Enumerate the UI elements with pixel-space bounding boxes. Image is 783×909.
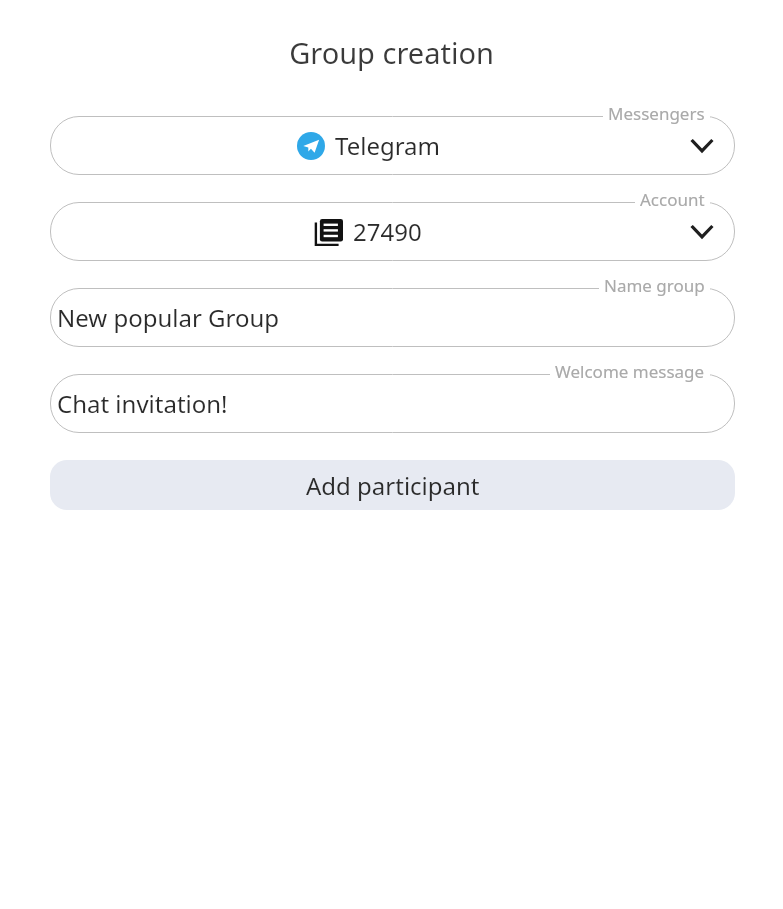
- button[interactable]: New popular Group: [50, 274, 735, 347]
- staticText: Welcome message: [555, 360, 705, 383]
- staticText: Add participant: [306, 469, 480, 502]
- other: Expand Account: [687, 217, 717, 247]
- staticText: Group creation: [0, 33, 783, 72]
- button[interactable]: Chat invitation!: [50, 360, 735, 433]
- staticText: 27490: [353, 215, 422, 248]
- staticText: Messengers: [608, 102, 705, 125]
- staticText: Telegram: [335, 129, 441, 162]
- staticText: New popular Group: [57, 301, 280, 334]
- staticText: Chat invitation!: [57, 387, 228, 420]
- staticText: Account: [640, 188, 705, 211]
- button[interactable]: Telegram: [50, 102, 735, 175]
- button[interactable]: 27490: [50, 188, 735, 261]
- other: Expand Messengers: [687, 131, 717, 161]
- staticText: Name group: [604, 274, 705, 297]
- button[interactable]: Add participant: [50, 460, 735, 510]
